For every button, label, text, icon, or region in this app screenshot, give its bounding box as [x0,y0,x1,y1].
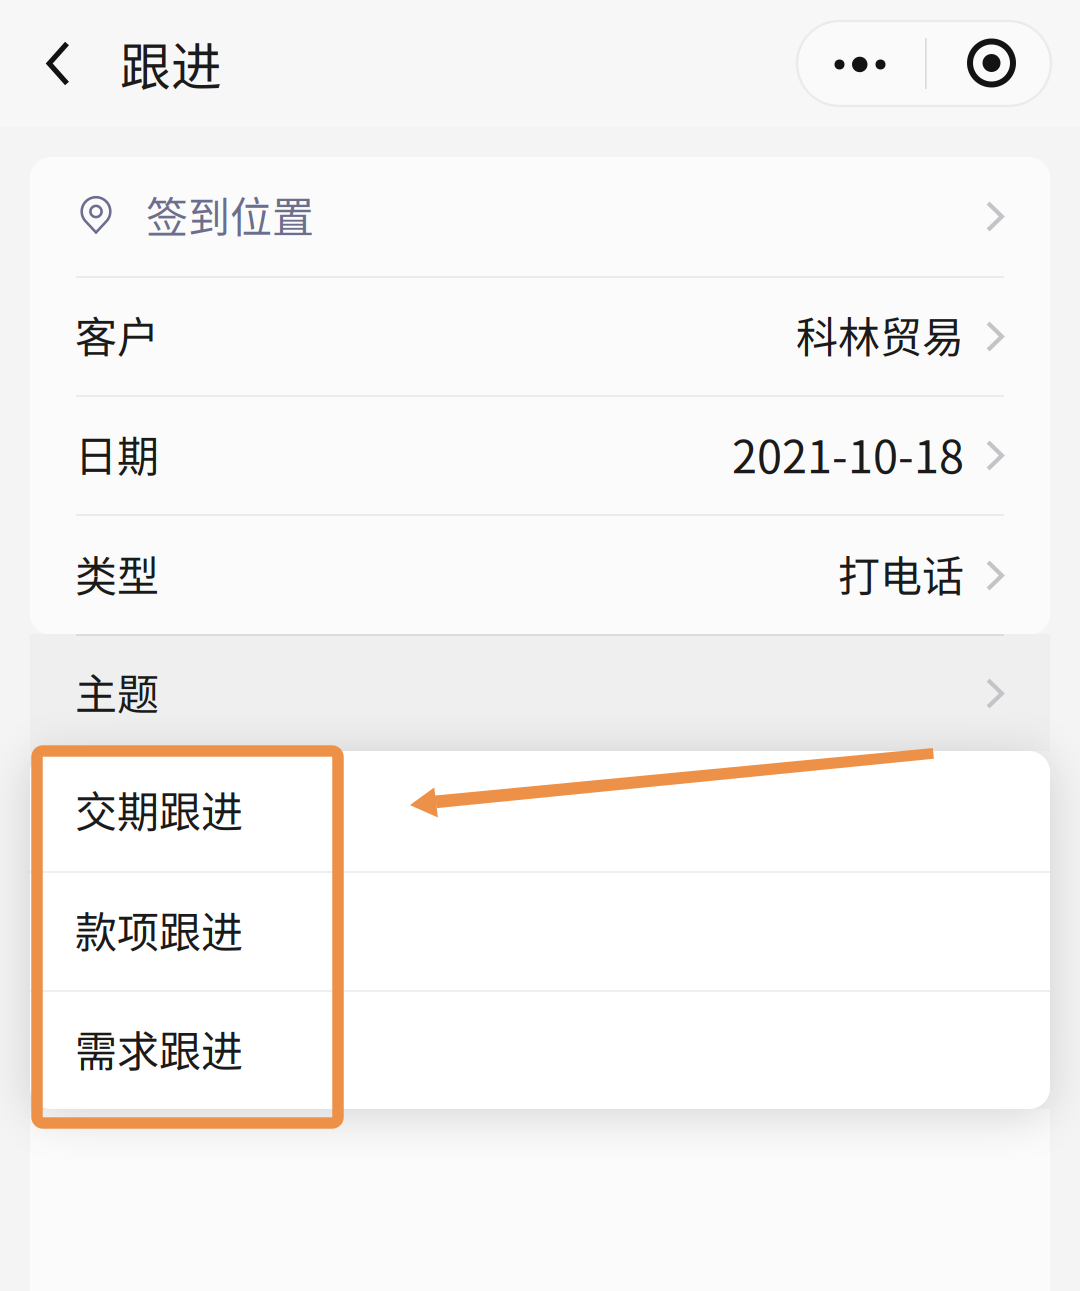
staticText: 日期 [75,423,159,484]
button[interactable]: 主题 [30,636,1050,751]
button[interactable]: 交期跟进 [30,751,1050,871]
staticText: 2021-10-18 [732,421,964,486]
staticText: 跟进 [120,27,222,100]
staticText: 款项跟进 [75,899,243,960]
staticText: 科林贸易 [796,304,964,365]
staticText: 交期跟进 [75,779,243,839]
button[interactable]: 需求跟进 [30,992,1050,1109]
button[interactable]: 款项跟进 [30,873,1050,990]
button[interactable]: 类型 [30,516,1050,635]
button[interactable]: More [797,21,924,106]
staticText: 签到位置 [146,184,314,245]
staticText: 客户 [75,304,159,365]
button[interactable]: 客户 [30,278,1050,395]
button[interactable]: Back [0,0,120,127]
staticText: 类型 [75,543,159,604]
button[interactable]: 签到位置 [30,157,1050,276]
button[interactable]: Close [924,21,1051,106]
staticText: 需求跟进 [75,1018,243,1079]
button[interactable]: 日期 [30,397,1050,514]
staticText: 主题 [75,661,159,722]
staticText: 打电话 [838,543,964,604]
